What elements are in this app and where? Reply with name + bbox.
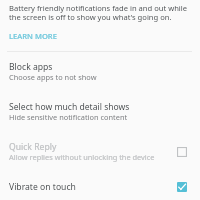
button[interactable]: Enabled: Vibrate on touch [174, 179, 190, 195]
staticText: Select how much detail shows [9, 101, 130, 113]
button[interactable]: Vibrate on touch [0, 179, 200, 195]
button[interactable]: Select how much detail shows [0, 100, 200, 124]
staticText: Allow replies without unlocking the devi… [9, 152, 155, 162]
staticText: Block apps [9, 61, 53, 73]
button[interactable]: Quick Reply [0, 140, 200, 164]
button[interactable]: Disabled: Quick Reply [174, 144, 190, 160]
staticText: Quick Reply [9, 141, 57, 153]
staticText: Vibrate on touch [9, 181, 76, 193]
staticText: Hide sensitive notification content [9, 112, 128, 122]
staticText: Battery friendly notifications fade in a… [9, 3, 188, 22]
staticText: LEARN MORE [9, 31, 57, 41]
staticText: Choose apps to not show [9, 72, 97, 82]
button[interactable]: LEARN MORE [9, 31, 57, 41]
button[interactable]: Block apps [0, 60, 200, 84]
